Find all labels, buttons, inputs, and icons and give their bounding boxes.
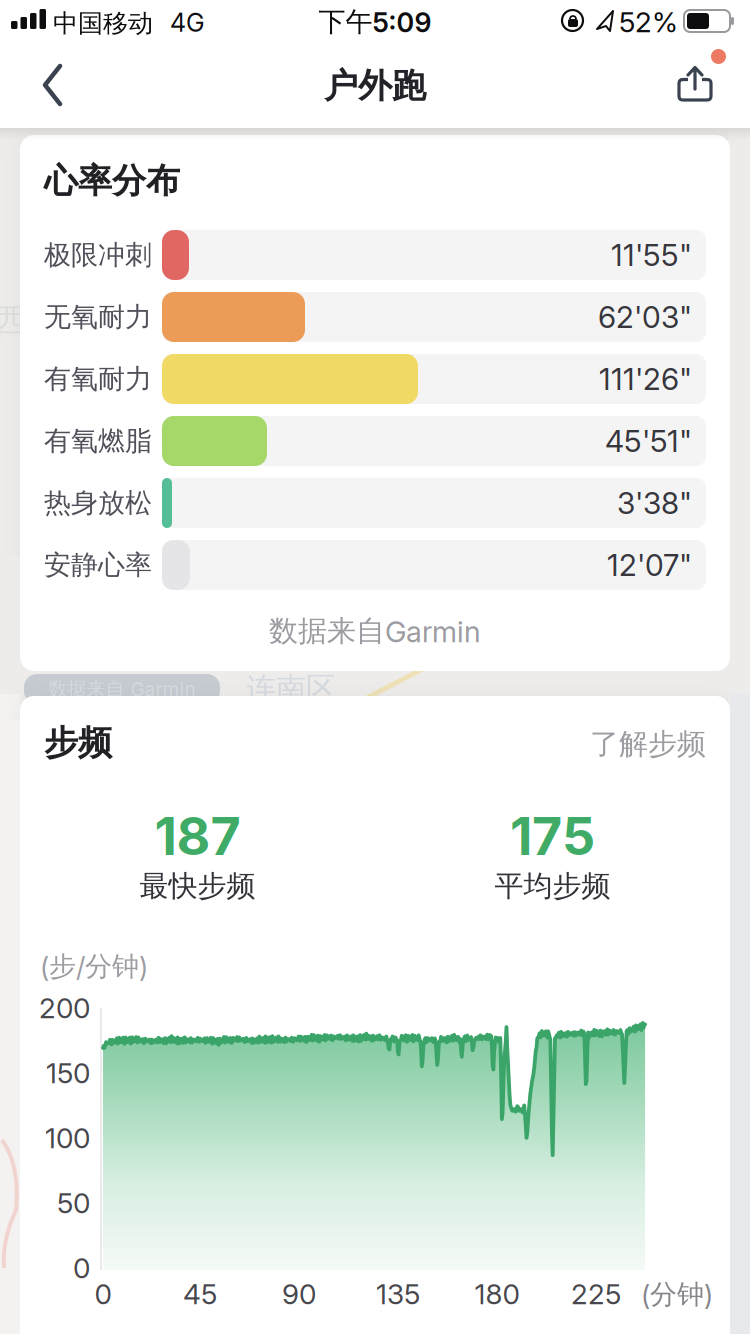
- staticText: 0: [94, 1277, 111, 1310]
- staticText: 下午5:09: [318, 5, 431, 39]
- staticText: 0: [73, 1251, 90, 1284]
- staticText: 135: [376, 1277, 420, 1310]
- staticText: 数据来自Garmin: [269, 613, 481, 649]
- staticText: 12'07": [607, 547, 692, 583]
- staticText: 45'51": [605, 423, 692, 459]
- staticText: (步/分钟): [40, 950, 148, 983]
- staticText: 225: [571, 1277, 621, 1310]
- staticText: 180: [474, 1277, 519, 1310]
- staticText: 52%: [619, 5, 678, 38]
- staticText: 111'26": [599, 361, 692, 397]
- staticText: 平均步频: [494, 868, 610, 904]
- staticText: 安静心率: [44, 548, 152, 582]
- staticText: 45: [183, 1277, 217, 1310]
- staticText: 150: [46, 1056, 90, 1089]
- staticText: 最快步频: [139, 868, 255, 904]
- staticText: 极限冲刺: [44, 238, 152, 272]
- staticText: 100: [45, 1121, 90, 1154]
- staticText: 62'03": [598, 299, 692, 335]
- staticText: 步频: [44, 722, 112, 764]
- staticText: 50: [57, 1186, 90, 1219]
- staticText: 有氧耐力: [44, 362, 152, 396]
- staticText: 数据来自 Garmin: [48, 677, 195, 701]
- staticText: 有氧燃脂: [44, 424, 152, 458]
- staticText: (分钟): [641, 1278, 713, 1311]
- staticText: 热身放松: [44, 486, 152, 520]
- staticText: 11'55": [611, 237, 692, 273]
- staticText: 4G: [170, 8, 205, 37]
- staticText: 90: [282, 1277, 316, 1310]
- staticText: 无氧耐力: [44, 300, 152, 334]
- staticText: 户外跑: [324, 65, 426, 107]
- staticText: 中国移动: [53, 8, 153, 39]
- staticText: 187: [154, 805, 240, 867]
- staticText: 心率分布: [44, 160, 180, 202]
- staticText: 了解步频: [590, 726, 706, 762]
- staticText: 3'38": [617, 485, 692, 521]
- staticText: 175: [510, 805, 595, 867]
- staticText: 200: [39, 991, 90, 1024]
- staticText: 连南区: [246, 670, 336, 707]
- staticText: 西: [0, 300, 28, 342]
